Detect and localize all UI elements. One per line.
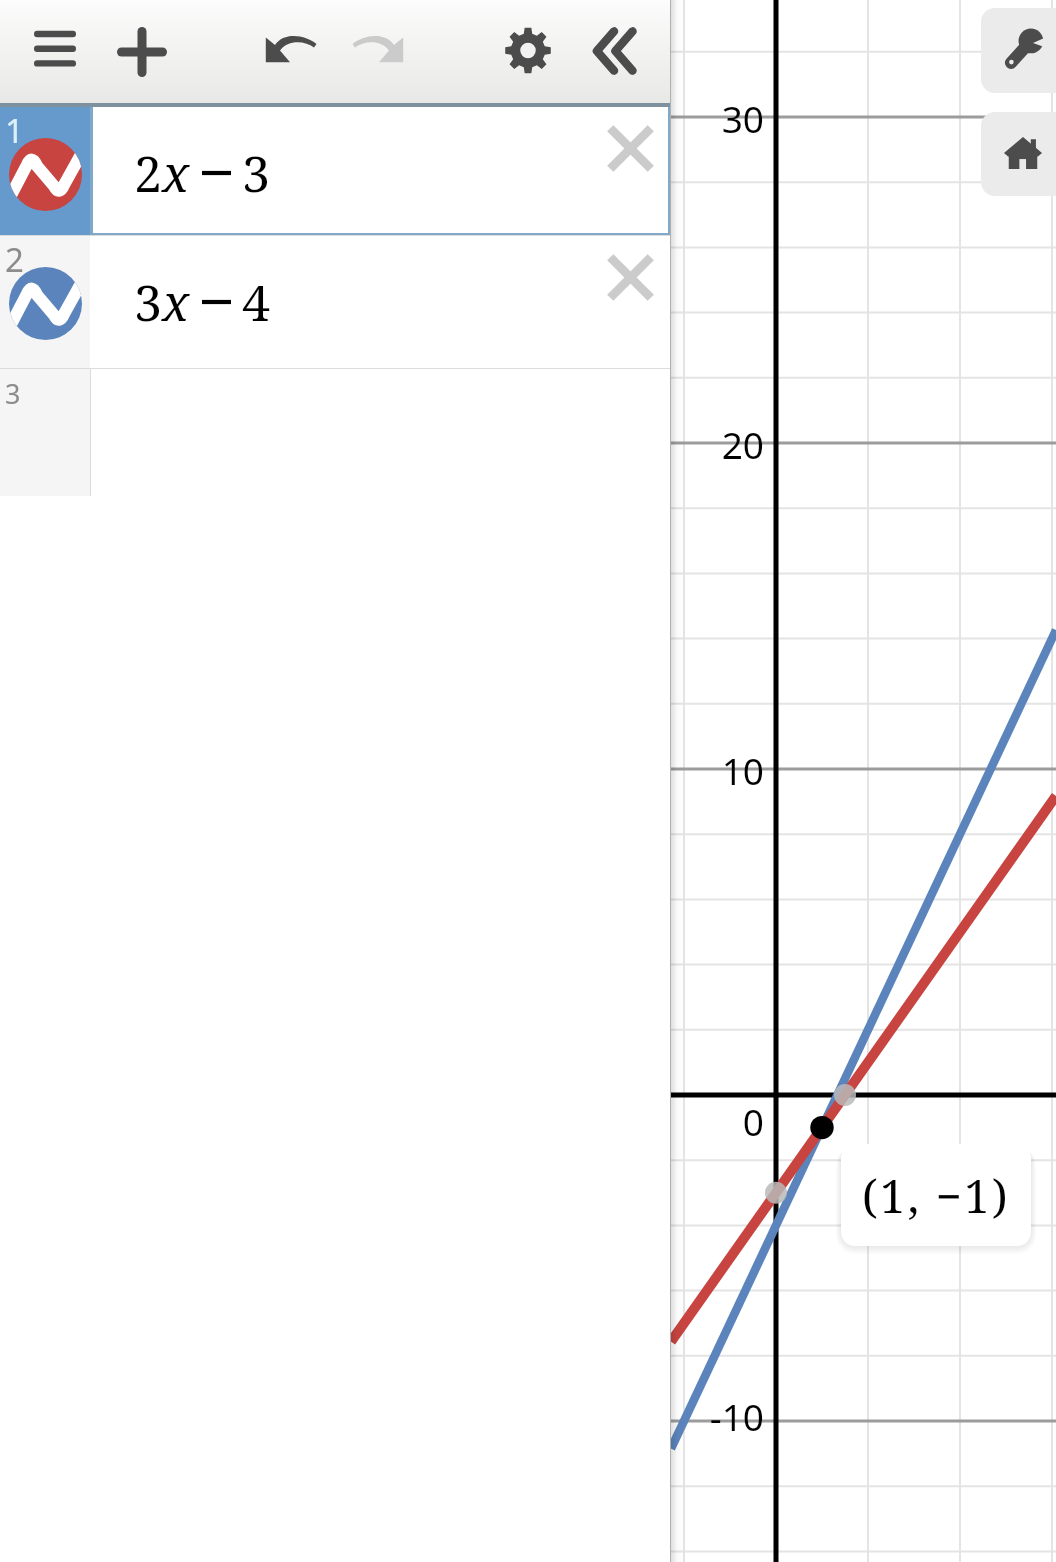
staticText: 4 [242,268,270,336]
staticText: 3 [242,139,270,207]
button[interactable]: 1 [0,107,671,236]
staticText: 2 [134,139,162,207]
staticText: 20 [721,419,764,469]
button[interactable]: 2 [0,236,671,369]
button[interactable]: Zoom tools [981,8,1056,93]
staticText: 2 [5,237,24,282]
staticText: x [162,268,190,336]
button[interactable]: (1, −1) [841,1144,1031,1246]
staticText: 30 [721,93,764,143]
button[interactable]: Undo [261,29,321,67]
button[interactable]: Delete expression 2 [590,236,670,316]
staticText: 3 [134,268,162,336]
button[interactable]: Delete expression 1 [590,107,670,187]
staticText: (1, −1) [862,1165,1010,1226]
staticText: x [162,139,190,207]
staticText: 0 [742,1096,764,1146]
staticText: -10 [709,1391,764,1441]
button[interactable]: Redo [348,29,408,67]
button[interactable]: Settings [503,25,553,76]
staticText: 1 [5,108,24,153]
button[interactable]: Add expression [100,10,184,94]
staticText: 10 [721,745,764,795]
button[interactable]: Collapse [593,27,636,75]
staticText: 3 [5,375,21,412]
button[interactable]: Home [981,112,1056,196]
button[interactable]: Menu [13,12,97,92]
